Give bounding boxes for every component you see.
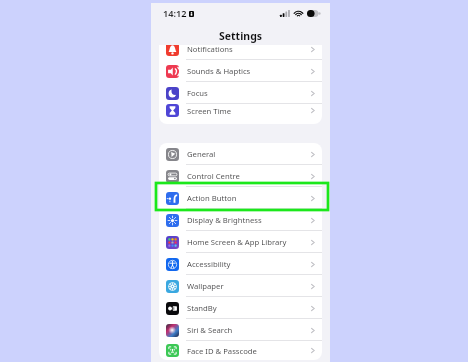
other: Highlight [156, 183, 328, 210]
button[interactable]: General [159, 143, 322, 165]
staticText: General [187, 149, 216, 159]
staticText: 14:12 [163, 7, 187, 20]
button[interactable]: Face ID & Passcode [159, 341, 322, 360]
button[interactable]: Accessibility [159, 253, 322, 275]
button[interactable]: Sounds & Haptics [159, 60, 322, 82]
staticText: Face ID & Passcode [187, 346, 257, 356]
button[interactable]: Action Button [159, 187, 322, 209]
staticText: Settings [219, 29, 263, 43]
staticText: Focus [187, 88, 208, 98]
staticText: Control Centre [187, 171, 240, 181]
button[interactable]: Screen Time [159, 104, 322, 117]
staticText: Action Button [187, 193, 237, 203]
button[interactable]: Focus [159, 82, 322, 104]
staticText: Display & Brightness [187, 215, 262, 225]
staticText: Screen Time [187, 106, 232, 116]
staticText: StandBy [187, 303, 217, 313]
staticText: Sounds & Haptics [187, 66, 251, 76]
button[interactable]: Siri & Search [159, 319, 322, 341]
staticText: Siri & Search [187, 325, 233, 335]
button[interactable]: Home Screen & App Library [159, 231, 322, 253]
button[interactable]: StandBy [159, 297, 322, 319]
staticText: Home Screen & App Library [187, 237, 287, 247]
button[interactable]: Wallpaper [159, 275, 322, 297]
staticText: Wallpaper [187, 281, 224, 291]
button[interactable]: Notifications [159, 45, 322, 60]
button[interactable]: Control Centre [159, 165, 322, 187]
staticText: Notifications [187, 45, 233, 54]
button[interactable]: Display & Brightness [159, 209, 322, 231]
staticText: Accessibility [187, 259, 231, 269]
